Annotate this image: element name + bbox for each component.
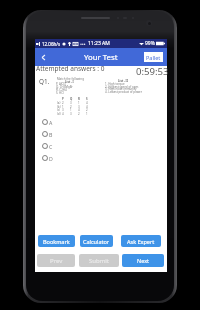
staticText: Q <box>70 97 73 101</box>
staticText: (d) <box>57 112 61 116</box>
staticText: A <box>49 119 53 126</box>
staticText: 3 <box>78 105 80 109</box>
staticText: R. C2H4 <box>56 88 67 92</box>
staticText: P <box>62 97 64 101</box>
button[interactable]: Ask Expert <box>121 235 161 247</box>
staticText: 4 <box>86 105 88 109</box>
staticText: Submit <box>89 257 110 265</box>
button[interactable]: B <box>35 128 167 140</box>
button[interactable]: D <box>35 152 167 164</box>
staticText: List - I <box>65 80 74 84</box>
staticText: 3 <box>62 108 64 112</box>
staticText: (a) <box>57 101 61 105</box>
staticText: 3. High noise immunity <box>105 87 137 91</box>
staticText: Next <box>137 257 150 264</box>
staticText: 4 <box>86 101 88 105</box>
staticText: 1 <box>78 101 80 105</box>
staticText: 3 <box>70 112 72 116</box>
button[interactable]: Submit <box>79 254 119 267</box>
staticText: 1 <box>86 112 88 116</box>
staticText: R <box>78 97 80 101</box>
staticText: Bookmark <box>43 238 70 245</box>
staticText: Pallet <box>146 54 161 61</box>
button[interactable]: Back <box>35 48 51 66</box>
staticText: 1 <box>70 108 72 112</box>
staticText: Ask Expert <box>127 238 155 245</box>
staticText: 12.06h/s <box>42 41 61 47</box>
staticText: Q1. <box>39 77 50 86</box>
button[interactable]: A <box>35 116 167 128</box>
staticText: Attempted answers : 0 <box>36 64 105 73</box>
staticText: 2 <box>62 101 64 105</box>
button[interactable]: Prev <box>37 254 75 267</box>
staticText: 2 <box>70 105 72 109</box>
staticText: S. HCl <box>56 91 64 95</box>
staticText: 99% <box>145 40 155 47</box>
staticText: D <box>49 155 53 162</box>
button[interactable]: Pallet <box>144 52 163 62</box>
staticText: 3 <box>70 101 72 105</box>
staticText: 1 <box>62 105 64 109</box>
staticText: C <box>49 143 53 150</box>
staticText: 4 <box>78 108 80 112</box>
button[interactable]: Next <box>122 254 164 267</box>
staticText: Calculator <box>83 238 110 245</box>
staticText: 2. Highest speed of oper. <box>105 85 139 89</box>
staticText: S <box>86 97 88 101</box>
staticText: 4 <box>62 112 64 116</box>
staticText: Match the following <box>57 77 84 81</box>
staticText: Prev <box>50 257 63 265</box>
staticText: 1. High torque <box>105 82 125 86</box>
staticText: List - II <box>118 79 128 83</box>
button[interactable]: C <box>35 140 167 152</box>
staticText: Q. CH3MgBr <box>56 85 73 89</box>
staticText: B <box>49 131 53 138</box>
staticText: P. AlCl3 <box>56 82 66 86</box>
staticText: Your Test <box>84 52 118 63</box>
staticText: 0:59:53 <box>136 65 169 78</box>
staticText: (c) <box>57 108 61 112</box>
button[interactable]: Calculator <box>80 235 113 247</box>
staticText: 2 <box>78 112 80 116</box>
staticText: 11:23 AM <box>88 40 110 47</box>
staticText: 4. Lowest product of power <box>105 90 142 94</box>
button[interactable]: Bookmark <box>38 235 75 247</box>
staticText: (b) <box>57 105 61 109</box>
staticText: 2 <box>86 108 88 112</box>
